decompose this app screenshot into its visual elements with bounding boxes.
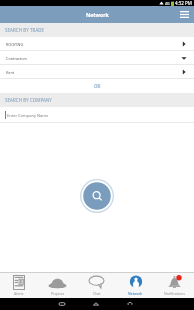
button[interactable]: Alerts [0,273,38,298]
button[interactable]: Enter Company Name [0,107,194,123]
staticText: Network [128,291,143,296]
staticText: Enter Company Name [7,113,49,118]
button[interactable]: ROOFING [0,37,194,51]
button[interactable]: Kent [0,65,194,79]
staticText: SEARCH BY TRADE [5,27,45,33]
button[interactable]: Search [80,179,114,213]
staticText: ROOFING [6,42,24,47]
staticText: 4G [165,1,170,6]
button[interactable]: Contractors [0,51,194,65]
staticText: Alerts [14,291,24,296]
staticText: Network [86,11,109,18]
staticText: Kent [6,70,15,75]
staticText: OR [94,83,101,89]
staticText: Notifications [164,291,185,296]
staticText: Contractors [6,56,27,61]
button[interactable]: Projects [38,273,77,298]
staticText: Projects [51,291,65,296]
button[interactable]: Network [116,273,155,298]
button[interactable]: Open navigation menu [174,6,194,23]
staticText: SEARCH BY COMPANY [5,97,52,103]
button[interactable]: Chat [77,273,116,298]
staticText: 4:52 PM [175,0,192,6]
button[interactable]: Notifications [155,273,194,298]
staticText: Chat [93,291,101,296]
